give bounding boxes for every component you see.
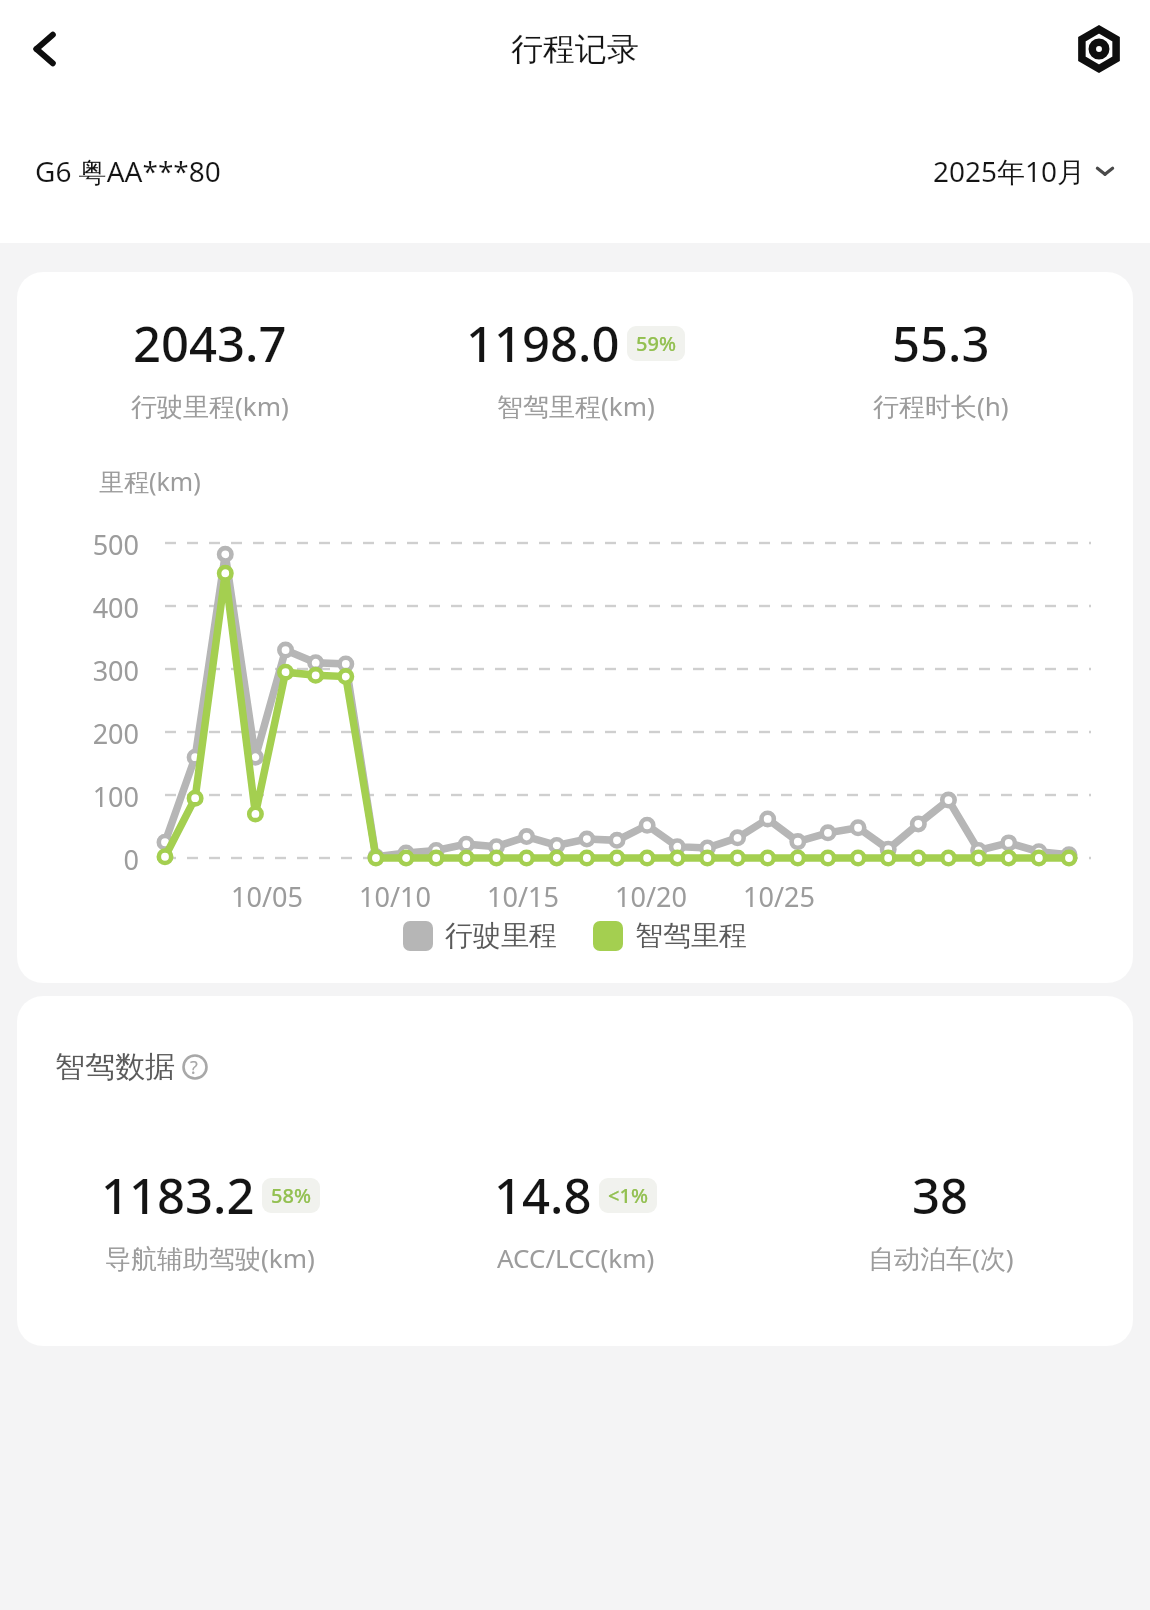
staticText: 10/20	[601, 878, 701, 915]
staticText: 55.3	[892, 310, 990, 377]
staticText: 行驶里程(km)	[131, 388, 289, 424]
staticText: 智驾里程	[635, 918, 747, 953]
staticText: 1183.2	[101, 1162, 255, 1229]
staticText: 300	[17, 652, 139, 689]
staticText: 行程记录	[511, 29, 639, 69]
staticText: 2043.7	[133, 310, 287, 377]
staticText: 59%	[636, 330, 676, 357]
staticText: 500	[17, 526, 139, 563]
staticText: 14.8	[494, 1162, 592, 1229]
staticText: 2025年10月	[933, 152, 1086, 190]
staticText: 自动泊车(次)	[868, 1240, 1014, 1276]
staticText: 0	[17, 841, 139, 878]
staticText: 10/10	[345, 878, 445, 915]
staticText: 行驶里程	[445, 918, 557, 953]
staticText: 200	[17, 715, 139, 752]
staticText: 导航辅助驾驶(km)	[105, 1240, 315, 1276]
staticText: G6 粤AA***80	[35, 152, 221, 190]
button[interactable]: 智驾数据	[55, 1048, 216, 1086]
staticText: 10/25	[729, 878, 829, 915]
button[interactable]: Back	[16, 19, 76, 79]
staticText: 100	[17, 778, 139, 815]
staticText: 10/05	[217, 878, 317, 915]
staticText: 38	[912, 1162, 969, 1229]
button[interactable]: 2025年10月	[933, 152, 1115, 190]
button[interactable]: Settings	[1068, 18, 1130, 80]
staticText: 智驾里程(km)	[497, 388, 655, 424]
staticText: ACC/LCC(km)	[497, 1240, 655, 1275]
staticText: 58%	[271, 1182, 311, 1209]
staticText: ?	[190, 1055, 198, 1080]
staticText: 10/15	[473, 878, 573, 915]
staticText: 400	[17, 589, 139, 626]
staticText: 智驾数据	[55, 1048, 175, 1086]
staticText: 里程(km)	[99, 464, 201, 498]
staticText: 行程时长(h)	[873, 388, 1009, 424]
staticText: <1%	[608, 1182, 648, 1209]
staticText: 1198.0	[466, 310, 620, 377]
